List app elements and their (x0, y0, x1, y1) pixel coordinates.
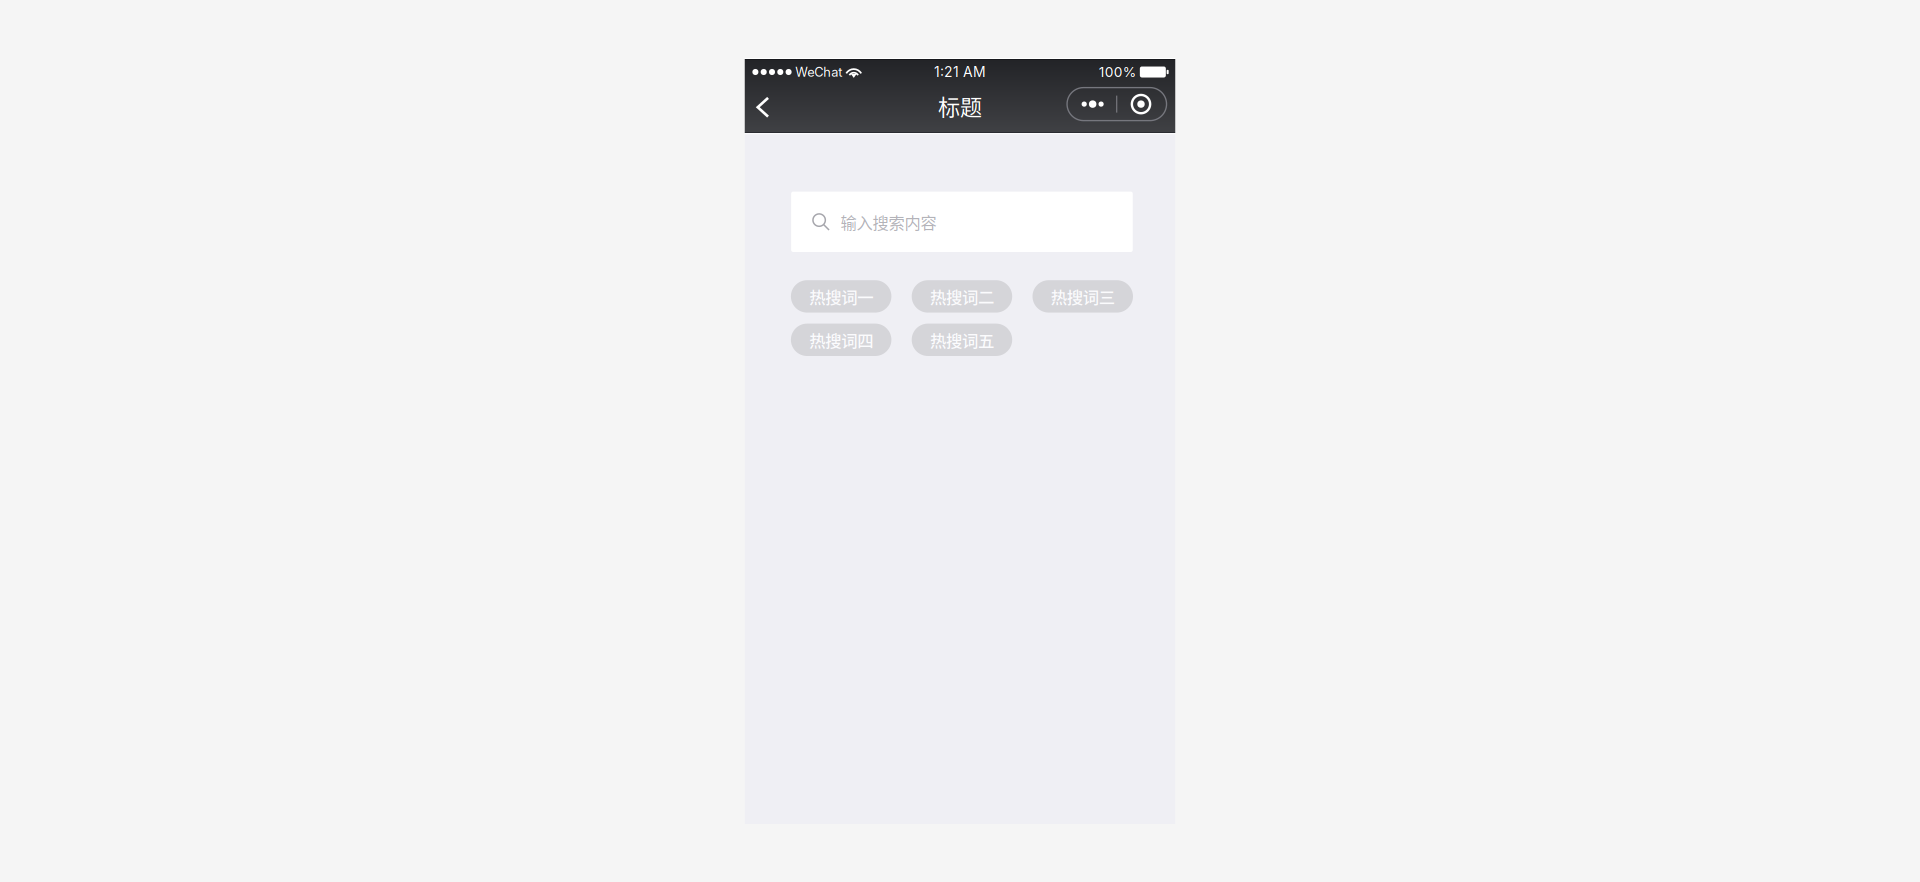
button[interactable]: 热搜词三 (1032, 280, 1133, 313)
staticText: WeChat (795, 64, 842, 80)
button[interactable]: 热搜词二 (912, 280, 1012, 313)
staticText: 输入搜索内容 (840, 210, 936, 234)
staticText: 热搜词四 (809, 328, 873, 352)
staticText: 1:21 AM (934, 63, 986, 80)
button[interactable]: 热搜词一 (791, 280, 891, 313)
staticText: 100% (1099, 64, 1136, 80)
staticText: 热搜词三 (1051, 284, 1115, 308)
staticText: 热搜词一 (809, 284, 873, 308)
staticText: 热搜词五 (930, 328, 994, 352)
staticText: 标题 (938, 89, 982, 121)
button[interactable]: Back (745, 84, 783, 132)
button[interactable]: 输入搜索内容 (791, 192, 1133, 252)
button[interactable]: More options (1067, 88, 1175, 121)
staticText: 热搜词二 (930, 284, 994, 308)
button[interactable]: 热搜词四 (791, 324, 891, 356)
button[interactable]: 热搜词五 (912, 324, 1012, 356)
